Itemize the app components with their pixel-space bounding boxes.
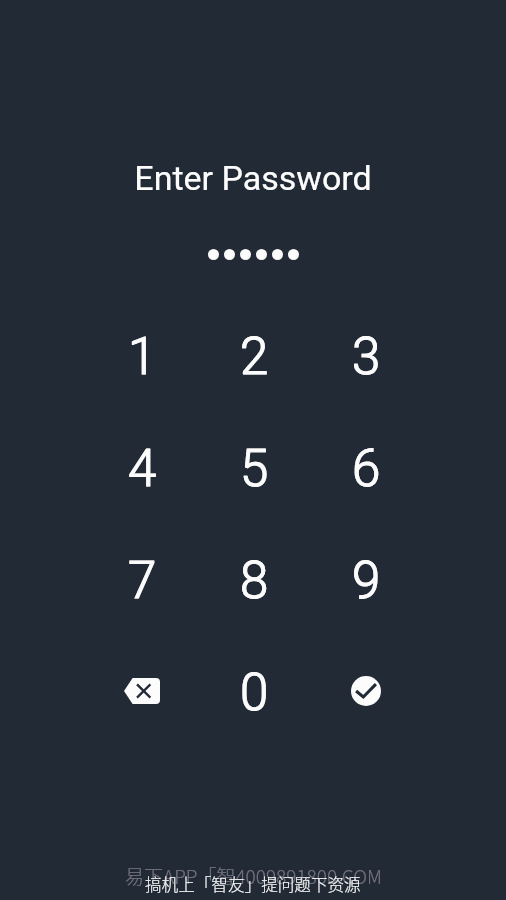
staticText: 2 — [240, 327, 269, 387]
button[interactable]: 0 — [198, 637, 310, 749]
button[interactable]: Confirm password — [310, 637, 422, 749]
staticText: 8 — [240, 551, 269, 611]
staticText: Enter Password — [134, 158, 372, 198]
button[interactable]: 5 — [198, 413, 310, 525]
button[interactable]: 7 — [86, 525, 198, 637]
staticText: 4 — [128, 439, 157, 499]
staticText: 3 — [352, 327, 381, 387]
button[interactable]: 9 — [310, 525, 422, 637]
staticText: 6 — [352, 439, 381, 499]
staticText: 4 — [128, 439, 157, 499]
staticText: 5 — [240, 439, 269, 499]
staticText: 易下APP「智4009891800.COM — [125, 862, 382, 890]
button[interactable]: Backspace — [86, 637, 198, 749]
staticText: 1 — [128, 327, 157, 387]
staticText: 7 — [128, 551, 157, 611]
staticText: 5 — [240, 439, 269, 499]
staticText: 0 — [240, 663, 269, 723]
staticText: 2 — [240, 327, 269, 387]
staticText: 9 — [352, 551, 381, 611]
staticText: 3 — [352, 327, 381, 387]
button[interactable]: 8 — [198, 525, 310, 637]
button[interactable]: 2 — [198, 301, 310, 413]
staticText: 6 — [352, 439, 381, 499]
staticText: 0 — [240, 663, 269, 723]
button[interactable]: 3 — [310, 301, 422, 413]
staticText: 搞机上「智友」提问题下资源 — [145, 872, 361, 896]
staticText: 1 — [128, 327, 157, 387]
staticText: 7 — [128, 551, 157, 611]
staticText: 9 — [352, 551, 381, 611]
button[interactable]: 1 — [86, 301, 198, 413]
button[interactable]: 4 — [86, 413, 198, 525]
staticText: 8 — [240, 551, 269, 611]
button[interactable]: 6 — [310, 413, 422, 525]
